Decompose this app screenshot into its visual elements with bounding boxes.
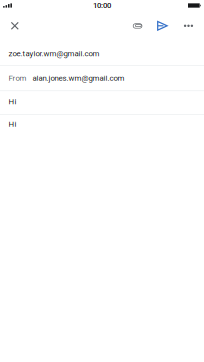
button[interactable]: Send	[150, 14, 175, 42]
button[interactable]: zoe.taylor.wm@gmail.com	[0, 42, 204, 65]
staticText: zoe.taylor.wm@gmail.com	[8, 49, 99, 58]
button[interactable]: More options	[175, 14, 202, 42]
button[interactable]: Close	[1, 14, 28, 42]
staticText: alan.jones.wm@gmail.com	[32, 73, 124, 83]
button[interactable]: Attach file	[125, 14, 150, 42]
staticText: Hi	[8, 119, 16, 129]
staticText: From	[8, 73, 26, 83]
button[interactable]: Hi	[0, 91, 204, 114]
button[interactable]: From	[0, 66, 204, 90]
button[interactable]: Hi	[0, 115, 204, 238]
staticText: 10:00	[93, 1, 111, 10]
staticText: Hi	[8, 97, 16, 106]
